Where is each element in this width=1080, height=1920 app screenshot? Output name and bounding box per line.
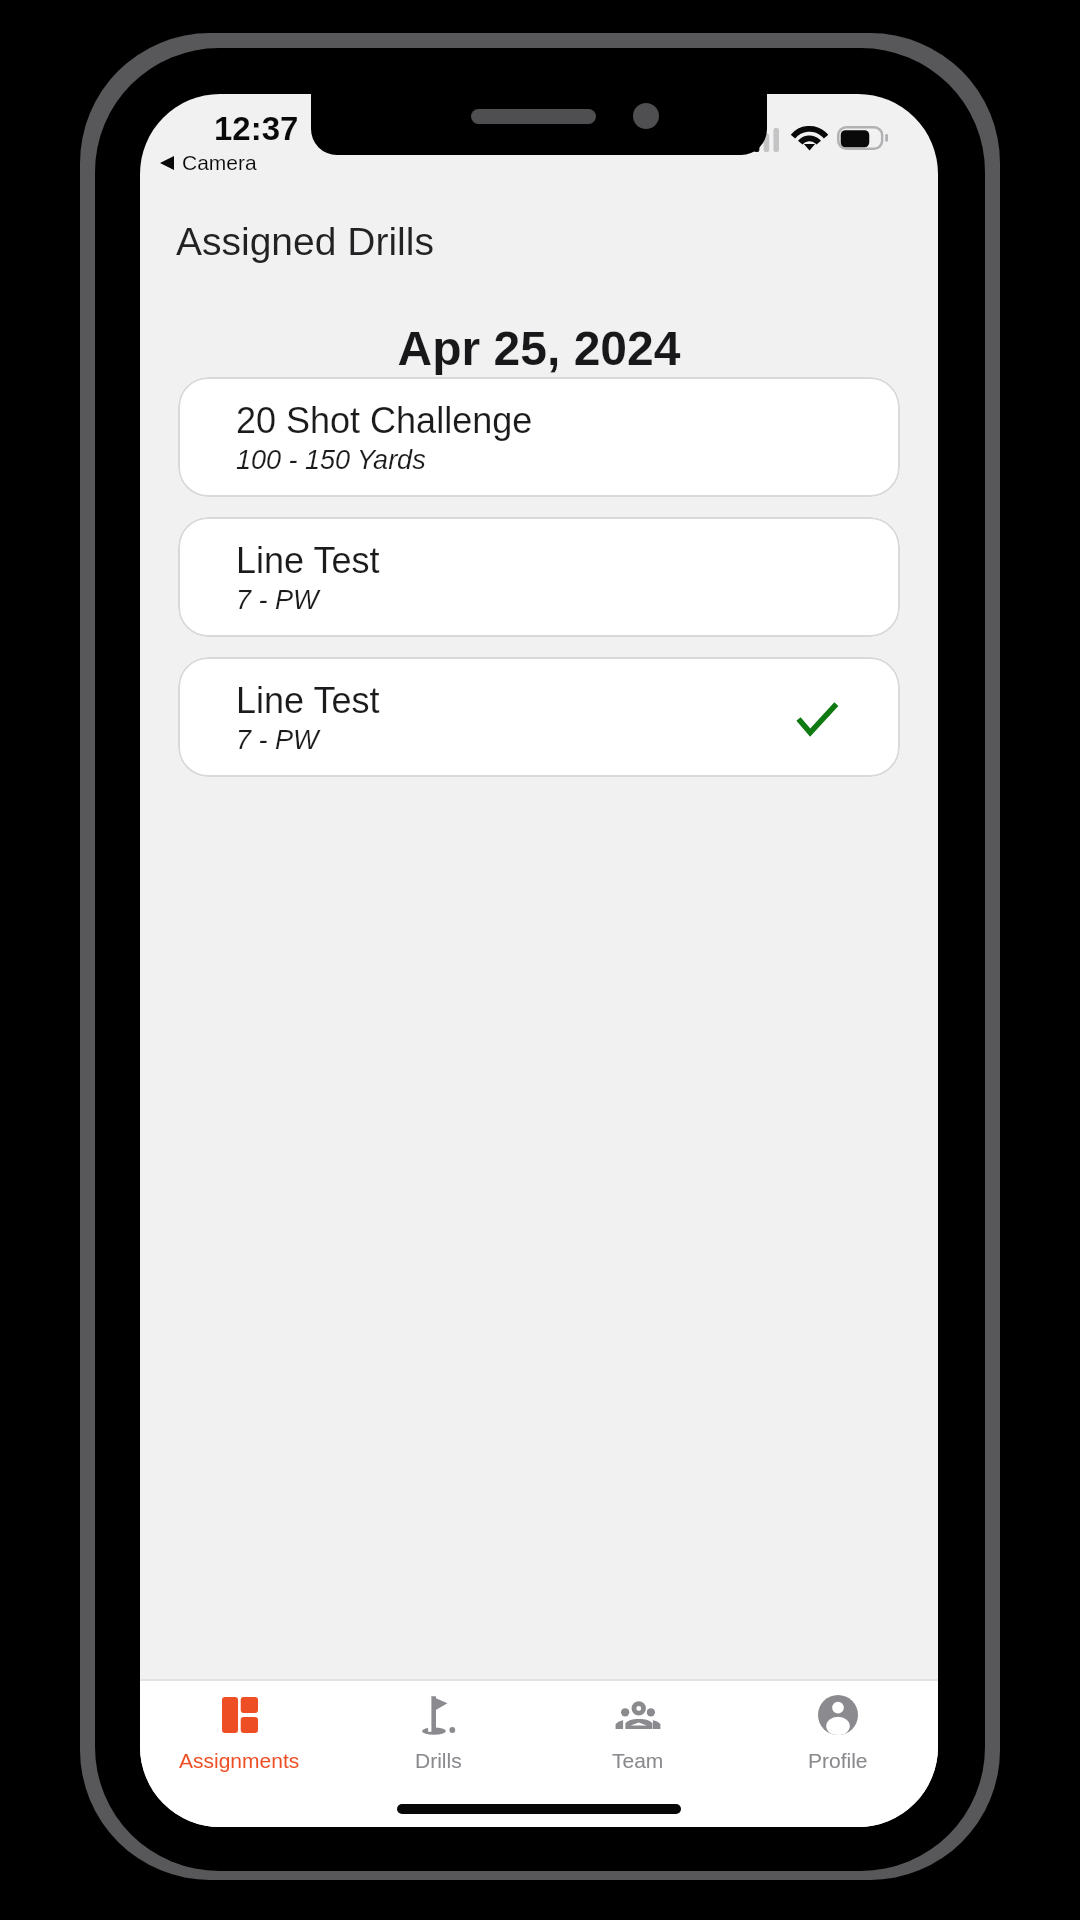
button[interactable]: Assignments (140, 1679, 339, 1783)
button[interactable]: Drills (339, 1679, 538, 1783)
button[interactable]: Team (538, 1679, 738, 1783)
staticText: Line Test (236, 540, 380, 580)
staticText: Team (612, 1749, 664, 1772)
button[interactable]: Line Test (178, 517, 900, 637)
staticText: Apr 25, 2024 (140, 322, 938, 376)
button[interactable]: 20 Shot Challenge (178, 377, 900, 497)
button[interactable]: Back to Camera (160, 151, 257, 174)
button[interactable]: Profile (738, 1679, 938, 1783)
staticText: Profile (808, 1749, 868, 1772)
staticText: 7 - PW (236, 725, 319, 755)
staticText: 20 Shot Challenge (236, 400, 533, 440)
button[interactable]: Line Test (178, 657, 900, 777)
staticText: Camera (182, 151, 257, 174)
staticText: 7 - PW (236, 585, 319, 615)
staticText: 100 - 150 Yards (236, 445, 426, 475)
staticText: Drills (415, 1749, 462, 1772)
staticText: Assigned Drills (176, 220, 434, 264)
other: Completed (798, 704, 836, 734)
staticText: Line Test (236, 680, 380, 720)
staticText: Assignments (179, 1749, 300, 1772)
staticText: 12:37 (214, 110, 299, 147)
